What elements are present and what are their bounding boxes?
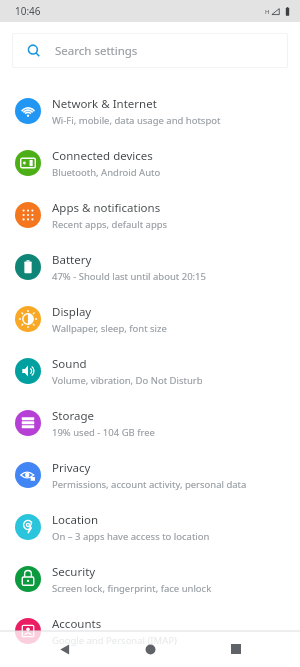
staticText: On – 3 apps have access to location [52, 530, 210, 543]
staticText: 47% - Should last until about 20:15 [52, 270, 206, 283]
button[interactable]: Apps & notifications [0, 189, 300, 241]
staticText: Search settings [55, 43, 138, 59]
staticText: Battery [52, 252, 92, 268]
button[interactable]: Home [129, 631, 171, 667]
button[interactable]: Display [0, 293, 300, 345]
staticText: Apps & notifications [52, 200, 161, 216]
button[interactable]: Privacy [0, 449, 300, 501]
button[interactable]: Connected devices [0, 137, 300, 189]
staticText: Display [52, 304, 92, 320]
button[interactable]: Accounts [0, 605, 300, 657]
staticText: 10:46 [15, 4, 41, 18]
staticText: Accounts [52, 616, 102, 632]
staticText: Wallpaper, sleep, font size [52, 322, 167, 335]
button[interactable]: Network & Internet [0, 85, 300, 137]
staticText: H [265, 8, 270, 16]
staticText: Volume, vibration, Do Not Disturb [52, 374, 203, 387]
button[interactable]: Search settings [12, 33, 288, 68]
staticText: Privacy [52, 460, 91, 476]
staticText: Recent apps, default apps [52, 218, 168, 231]
staticText: Location [52, 512, 99, 528]
button[interactable]: Back [44, 631, 86, 667]
staticText: Security [52, 564, 96, 580]
button[interactable]: Security [0, 553, 300, 605]
staticText: Google and Personal (IMAP) [52, 634, 177, 647]
staticText: Connected devices [52, 148, 153, 164]
button[interactable]: Location [0, 501, 300, 553]
button[interactable]: Sound [0, 345, 300, 397]
staticText: Storage [52, 408, 94, 424]
button[interactable]: Recent apps [215, 631, 257, 667]
staticText: Bluetooth, Android Auto [52, 166, 161, 179]
staticText: 19% used - 104 GB free [52, 426, 155, 439]
button[interactable]: Storage [0, 397, 300, 449]
button[interactable]: Battery [0, 241, 300, 293]
staticText: Wi-Fi, mobile, data usage and hotspot [52, 114, 221, 127]
staticText: Permissions, account activity, personal … [52, 478, 247, 491]
staticText: Screen lock, fingerprint, face unlock [52, 582, 212, 595]
staticText: Network & Internet [52, 96, 157, 112]
staticText: Sound [52, 356, 87, 372]
